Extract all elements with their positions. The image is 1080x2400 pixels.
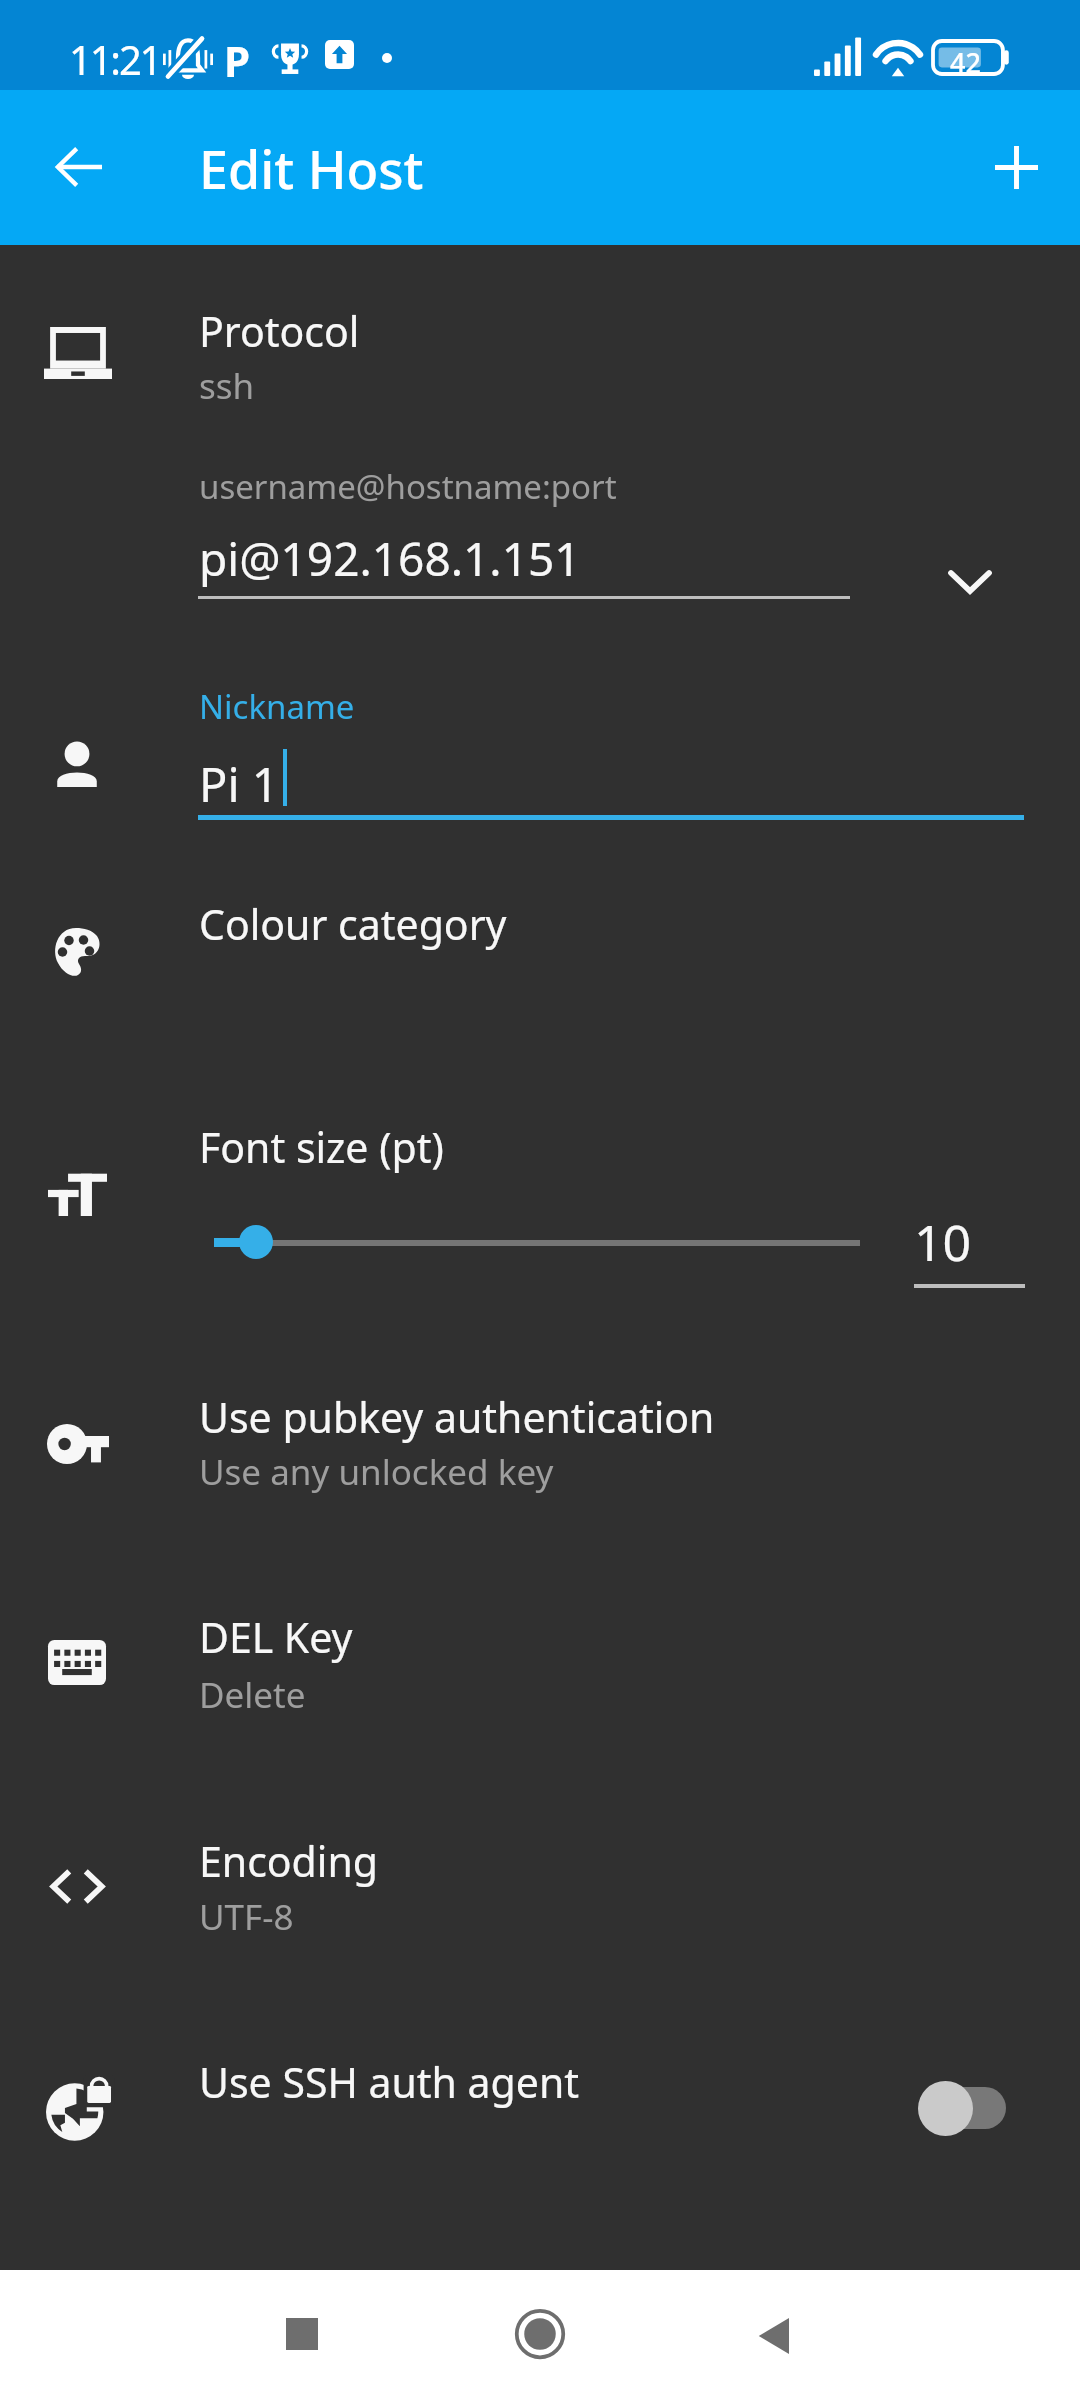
staticText: Use any unlocked key: [199, 1448, 554, 1496]
staticText: 10: [914, 1208, 972, 1276]
staticText: Protocol: [199, 303, 360, 359]
staticText: Use SSH auth agent: [199, 2054, 580, 2110]
button[interactable]: Show host list: [920, 530, 1020, 630]
staticText: pi@192.168.1.151: [199, 527, 581, 590]
staticText: Colour category: [199, 896, 507, 952]
staticText: Font size (pt): [199, 1119, 444, 1175]
button[interactable]: Home: [495, 2289, 585, 2379]
staticText: Pi 1: [199, 752, 279, 816]
staticText: Use pubkey authentication: [199, 1389, 715, 1445]
staticText: P: [224, 32, 251, 89]
button[interactable]: username@hostname:port: [198, 450, 850, 600]
staticText: Delete: [199, 1671, 306, 1719]
staticText: username@hostname:port: [199, 464, 617, 509]
button[interactable]: Back: [726, 2291, 816, 2381]
button[interactable]: Font size slider: [222, 1208, 290, 1276]
staticText: 42: [950, 44, 981, 81]
button[interactable]: Protocol: [0, 290, 1080, 425]
button[interactable]: Recent apps: [257, 2289, 347, 2379]
button[interactable]: Back: [33, 121, 125, 213]
button[interactable]: Use SSH auth agent toggle: [905, 2068, 1025, 2148]
button[interactable]: Use SSH auth agent: [0, 2035, 1080, 2165]
staticText: Nickname: [199, 684, 355, 729]
button[interactable]: Encoding: [0, 1819, 1080, 1954]
staticText: Edit Host: [199, 133, 424, 204]
button[interactable]: Colour category: [0, 875, 1080, 995]
button[interactable]: DEL Key: [0, 1597, 1080, 1732]
button[interactable]: Use pubkey authentication: [0, 1375, 1080, 1510]
staticText: UTF-8: [199, 1893, 294, 1941]
staticText: DEL Key: [199, 1609, 353, 1665]
staticText: 11:21: [69, 32, 161, 86]
staticText: Encoding: [199, 1833, 378, 1889]
button[interactable]: Nickname: [198, 670, 1024, 820]
button[interactable]: Add host: [970, 121, 1062, 213]
staticText: ssh: [199, 362, 255, 410]
